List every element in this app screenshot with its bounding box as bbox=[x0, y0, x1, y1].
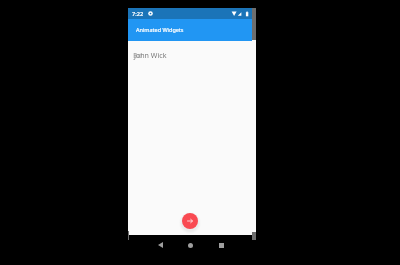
button[interactable]: Next bbox=[182, 213, 198, 229]
staticText: Animated Widgets bbox=[136, 26, 184, 33]
button[interactable]: Back bbox=[154, 239, 166, 251]
staticText: 7:22 bbox=[132, 10, 144, 18]
button[interactable]: Recent apps bbox=[215, 239, 227, 251]
staticText: John Wick bbox=[134, 50, 167, 60]
button[interactable]: Home bbox=[184, 239, 196, 251]
staticText: Bo bbox=[133, 50, 142, 60]
button[interactable]: Animated Widgets bbox=[128, 19, 252, 41]
